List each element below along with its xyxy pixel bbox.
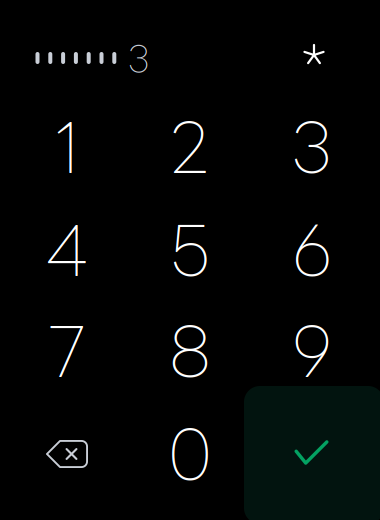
staticText: 2 bbox=[169, 111, 210, 183]
staticText: 4 bbox=[44, 214, 89, 286]
button[interactable]: 8 bbox=[129, 300, 251, 401]
button[interactable]: 1 bbox=[6, 96, 128, 197]
staticText: 5 bbox=[170, 214, 210, 286]
button[interactable]: 3 bbox=[251, 96, 373, 197]
button[interactable]: 6 bbox=[251, 199, 373, 300]
button[interactable]: Asterisk bbox=[253, 27, 375, 83]
staticText: 1 bbox=[54, 111, 80, 183]
staticText: 6 bbox=[292, 214, 331, 286]
staticText: 0 bbox=[168, 418, 212, 490]
button[interactable]: 0 bbox=[129, 403, 251, 504]
staticText: 3 bbox=[128, 40, 149, 78]
button[interactable]: Confirm bbox=[244, 386, 380, 520]
staticText: 9 bbox=[292, 315, 331, 387]
button[interactable]: Delete bbox=[6, 403, 128, 504]
staticText: 3 bbox=[291, 111, 332, 183]
staticText: 8 bbox=[169, 315, 211, 387]
button[interactable]: 4 bbox=[6, 199, 128, 300]
button[interactable]: 7 bbox=[6, 300, 128, 401]
button[interactable]: 2 bbox=[129, 96, 251, 197]
button[interactable]: 9 bbox=[251, 300, 373, 401]
button[interactable]: 5 bbox=[129, 199, 251, 300]
staticText: 7 bbox=[47, 315, 87, 387]
